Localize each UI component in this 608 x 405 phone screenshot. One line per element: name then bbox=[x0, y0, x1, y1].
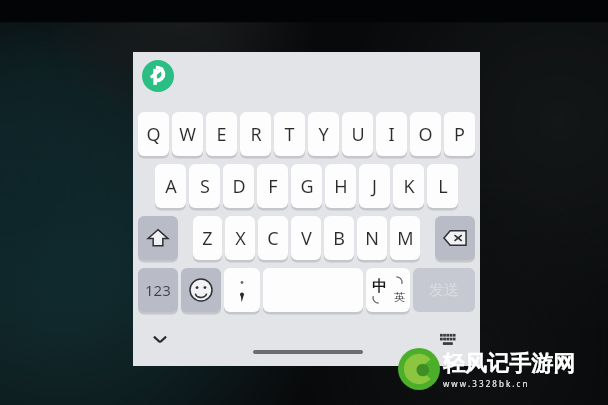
staticText: Y bbox=[318, 122, 329, 147]
button[interactable]: W bbox=[172, 112, 203, 156]
button[interactable]: O bbox=[410, 112, 441, 156]
staticText: 中 bbox=[372, 277, 387, 296]
staticText: N bbox=[365, 226, 379, 251]
button[interactable]: T bbox=[274, 112, 305, 156]
button[interactable]: M bbox=[390, 216, 420, 260]
button[interactable]: V bbox=[291, 216, 321, 260]
button[interactable]: K bbox=[393, 164, 424, 208]
staticText: R bbox=[250, 122, 262, 147]
button[interactable]: Chinese English toggle bbox=[366, 268, 410, 312]
staticText: V bbox=[301, 226, 312, 251]
button[interactable]: Y bbox=[308, 112, 339, 156]
staticText: 发送 bbox=[429, 281, 459, 300]
staticText: X bbox=[235, 226, 246, 251]
button[interactable]: X bbox=[225, 216, 255, 260]
staticText: M bbox=[397, 226, 414, 251]
staticText: F bbox=[268, 174, 278, 199]
staticText: P bbox=[454, 122, 465, 147]
staticText: I bbox=[388, 122, 395, 147]
staticText: 123 bbox=[145, 280, 171, 300]
staticText: H bbox=[334, 174, 348, 199]
staticText: 轻风记手游网 bbox=[443, 350, 575, 378]
staticText: D bbox=[232, 174, 246, 199]
button[interactable]: Z bbox=[193, 216, 222, 260]
button[interactable]: D bbox=[223, 164, 254, 208]
button[interactable]: L bbox=[427, 164, 458, 208]
staticText: A bbox=[165, 174, 177, 199]
button[interactable]: Backspace bbox=[435, 216, 475, 260]
staticText: J bbox=[372, 174, 377, 199]
button[interactable]: F bbox=[257, 164, 288, 208]
button[interactable]: E bbox=[206, 112, 237, 156]
staticText: U bbox=[351, 122, 365, 147]
button[interactable]: 发送 bbox=[413, 268, 475, 312]
button[interactable]: S bbox=[189, 164, 220, 208]
staticText: O bbox=[418, 122, 433, 147]
staticText: Q bbox=[146, 122, 161, 147]
button[interactable]: Space bbox=[263, 268, 363, 312]
button[interactable]: U bbox=[342, 112, 373, 156]
button[interactable]: Input method logo bbox=[142, 60, 174, 92]
staticText: B bbox=[333, 226, 345, 251]
button[interactable]: 123 bbox=[138, 268, 178, 312]
staticText: G bbox=[300, 174, 314, 199]
button[interactable]: Comma bbox=[224, 268, 260, 312]
staticText: T bbox=[284, 122, 295, 147]
button[interactable]: J bbox=[359, 164, 390, 208]
button[interactable]: N bbox=[357, 216, 387, 260]
button[interactable]: Shift bbox=[138, 216, 178, 260]
button[interactable]: P bbox=[444, 112, 475, 156]
staticText: W bbox=[179, 122, 196, 147]
button[interactable]: Emoji bbox=[181, 268, 221, 312]
staticText: w w w . 3 3 2 8 b k . c n bbox=[443, 378, 528, 389]
staticText: 英 bbox=[394, 290, 405, 304]
staticText: S bbox=[200, 174, 210, 199]
staticText: L bbox=[438, 174, 448, 199]
button[interactable]: Switch keyboard bbox=[433, 324, 463, 354]
button[interactable]: I bbox=[376, 112, 407, 156]
button[interactable]: G bbox=[291, 164, 322, 208]
staticText: E bbox=[216, 122, 227, 147]
button[interactable]: R bbox=[240, 112, 271, 156]
staticText: K bbox=[403, 174, 415, 199]
button[interactable]: A bbox=[155, 164, 186, 208]
button[interactable]: Q bbox=[138, 112, 169, 156]
button[interactable]: H bbox=[325, 164, 356, 208]
button[interactable]: C bbox=[258, 216, 288, 260]
button[interactable]: Hide keyboard bbox=[143, 322, 177, 356]
staticText: Z bbox=[202, 226, 213, 251]
button[interactable]: B bbox=[324, 216, 354, 260]
staticText: C bbox=[267, 226, 279, 251]
